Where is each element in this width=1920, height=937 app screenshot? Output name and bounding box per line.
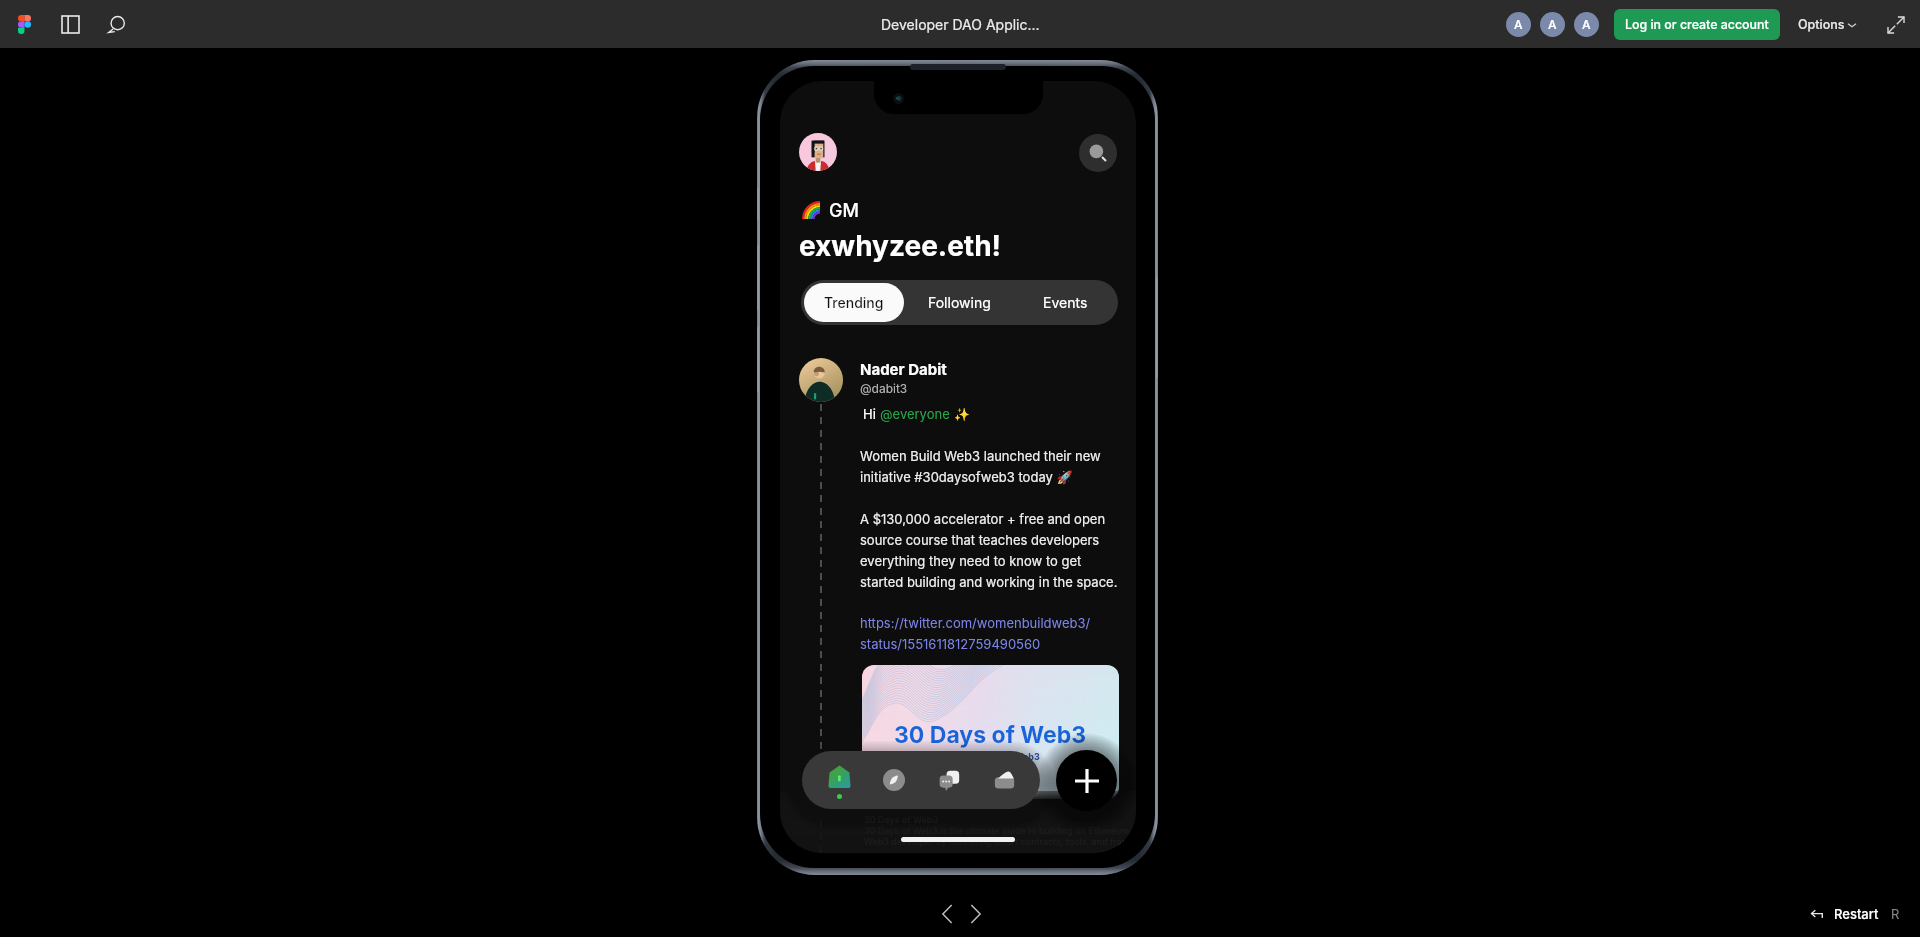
button[interactable]: Previous [933,900,961,928]
button[interactable]: Create post [1056,750,1117,811]
button[interactable]: Explore [873,759,915,801]
staticText: R [1891,906,1900,922]
staticText: 30 Days of Web3 [894,721,1087,749]
staticText: https://twitter.com/womenbuildweb3/ [860,615,1091,631]
staticText: A [1514,17,1523,32]
button[interactable]: Comments [99,7,133,41]
staticText: exwhyzee.eth! [799,229,1002,263]
button[interactable]: Events [1012,280,1118,325]
staticText: ✨ [950,406,970,422]
button[interactable]: Home [818,759,860,801]
staticText: Trending [824,294,884,311]
staticText: @everyone [880,406,950,422]
button[interactable]: Wallet [983,759,1025,801]
staticText: @dabit3 [860,381,908,396]
button[interactable]: Collaborator [1540,12,1565,37]
staticText: A $130,000 accelerator + free and open [860,511,1106,527]
staticText: A [1548,17,1557,32]
button[interactable]: Collaborator [1506,12,1531,37]
staticText: 30 Days of Web3 [864,814,939,825]
staticText: Nader Dabit [860,360,947,378]
staticText: Web3 developer by mastering smart contra… [864,836,1136,847]
staticText: Events [1043,294,1088,311]
staticText: Hi [863,406,880,422]
staticText: started building and working in the spac… [860,574,1118,590]
staticText: everything they need to know to get [860,553,1082,569]
staticText: Restart [1834,906,1879,922]
staticText: A [1582,17,1591,32]
staticText: Log in or create account [1625,17,1769,32]
button[interactable]: Log in or create account [1614,9,1780,40]
staticText: Women Build Web3 launched their new [860,448,1101,464]
button[interactable]: 30 Days of Web3 [862,665,1119,799]
staticText: source course that teaches developers [860,532,1100,548]
button[interactable]: Messages [928,759,970,801]
staticText: status/1551611812759490560 [860,636,1041,652]
button[interactable]: Options [1794,11,1861,38]
staticText: GM [829,200,859,222]
button[interactable]: Profile [799,133,837,171]
button[interactable]: Next [961,900,989,928]
button[interactable]: Trending [804,283,904,322]
button[interactable]: Following [907,280,1012,325]
staticText: 30 Days of Web3 is the ultimate guide to… [864,825,1136,836]
button[interactable]: Collaborator [1574,12,1599,37]
staticText: Developer DAO Applic... [881,16,1040,33]
staticText: Options [1798,17,1845,32]
button[interactable]: Fullscreen [1883,12,1909,38]
staticText: Following [928,294,991,311]
staticText: by Women Build Web3 [941,751,1040,762]
button[interactable]: Nader Dabit avatar [799,358,843,402]
staticText: initiative #30daysofweb3 today 🚀 [860,469,1073,485]
button[interactable]: Restart prototype [1806,903,1828,925]
button[interactable]: Search [1079,134,1117,172]
button[interactable]: Toggle sidebar [53,7,87,41]
button[interactable]: Figma home [7,7,41,41]
